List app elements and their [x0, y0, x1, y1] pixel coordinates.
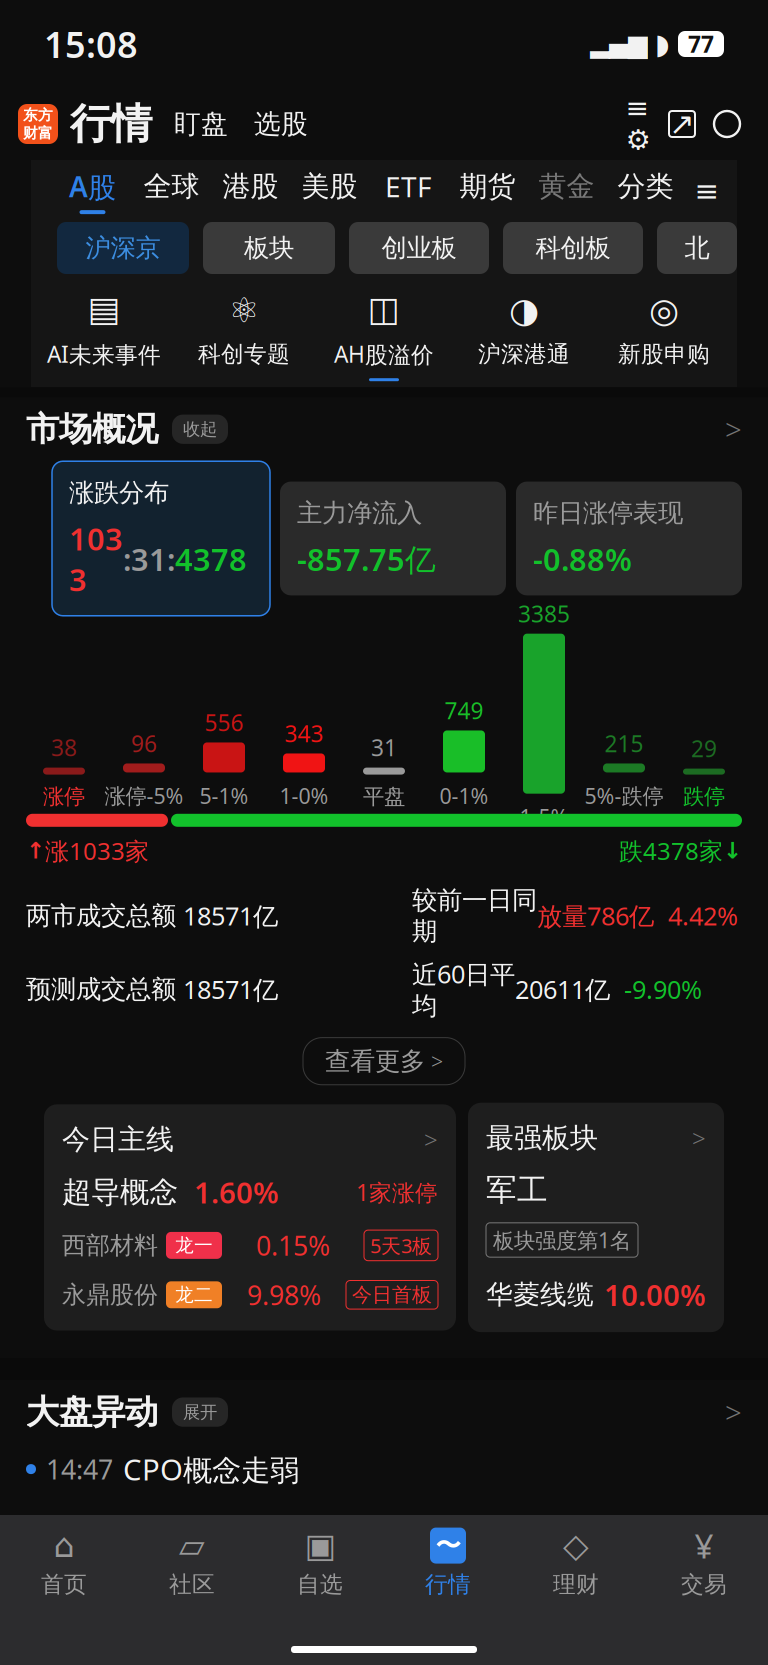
button[interactable]: 北 — [657, 222, 737, 274]
staticText: ▂▄▆ — [590, 30, 647, 58]
staticText: A股 — [69, 168, 116, 205]
button[interactable]: 全球 — [132, 160, 211, 222]
staticText: 收起 — [183, 419, 217, 440]
button[interactable]: 筛选设置 — [616, 102, 660, 146]
staticText: 5天3板 — [370, 1232, 432, 1259]
button[interactable]: ⌂ — [0, 1520, 128, 1606]
button[interactable]: ¥ — [640, 1520, 768, 1606]
staticText: 1家涨停 — [356, 1177, 438, 1207]
button[interactable]: 板块 — [203, 222, 335, 274]
staticText: 涨1033家 — [45, 835, 149, 867]
button[interactable]: A股 — [53, 160, 132, 222]
button[interactable]: 昨日涨停表现 — [516, 482, 742, 595]
button[interactable]: 搜索 — [704, 102, 750, 146]
button[interactable]: 主力净流入 — [280, 482, 506, 595]
button[interactable]: 查看更多 — [303, 1038, 465, 1085]
button[interactable]: 盯盘 — [152, 108, 228, 140]
staticText: ETF — [385, 168, 432, 205]
staticText: 永鼎股份 — [62, 1280, 158, 1310]
button[interactable]: 今日主线 — [44, 1104, 456, 1330]
staticText: > — [424, 1124, 438, 1155]
staticText: 东方 财富 — [23, 106, 53, 142]
button[interactable]: 市场概况 — [0, 397, 768, 461]
button[interactable]: ▱ — [128, 1520, 256, 1606]
staticText: 美股 — [301, 169, 357, 204]
button[interactable]: ◎ — [594, 289, 734, 380]
staticText: ≡⚙ — [625, 92, 650, 156]
staticText: 4.42% — [654, 899, 738, 933]
button[interactable]: 涨跌分布 — [52, 461, 270, 616]
staticText: 放量786亿 — [537, 899, 654, 933]
staticText: 交易 — [681, 1571, 727, 1598]
button[interactable]: 14:47 — [0, 1444, 768, 1494]
button[interactable]: ◇ — [512, 1520, 640, 1606]
button[interactable]: ◫ — [314, 288, 454, 381]
button[interactable]: 港股 — [211, 160, 290, 222]
staticText: 5%-跌停 — [584, 781, 663, 810]
staticText: 查看更多 — [325, 1046, 425, 1077]
staticText: 29 — [691, 733, 717, 764]
button[interactable]: ▤ — [34, 288, 174, 381]
button[interactable]: ETF — [369, 160, 448, 222]
staticText: AH股溢价 — [334, 339, 434, 369]
staticText: 沪深港通 — [478, 340, 570, 368]
staticText: ◗ — [655, 28, 670, 60]
staticText: ↓ — [723, 838, 742, 864]
staticText: 北 — [684, 232, 709, 263]
staticText: 军工 — [486, 1171, 548, 1209]
button[interactable]: 选股 — [228, 108, 308, 140]
staticText: 港股 — [222, 169, 278, 204]
button[interactable]: 沪深京 — [57, 222, 189, 274]
button[interactable]: 创业板 — [349, 222, 489, 274]
staticText: 涨停 — [43, 784, 85, 810]
staticText: 市场概况 — [26, 409, 158, 450]
button[interactable]: 全部分类 — [685, 160, 729, 222]
staticText: ⌂ — [53, 1527, 74, 1564]
staticText: 板块强度第1名 — [493, 1226, 631, 1254]
staticText: 板块 — [244, 232, 294, 263]
staticText: 社区 — [169, 1571, 215, 1598]
button[interactable]: 美股 — [290, 160, 369, 222]
staticText: 全球 — [143, 169, 199, 204]
staticText: ⚛ — [228, 290, 259, 330]
staticText: 展开 — [183, 1401, 217, 1423]
staticText: 主力净流入 — [297, 498, 422, 529]
staticText: 分类 — [617, 169, 673, 204]
staticText: 4378 — [175, 539, 247, 579]
staticText: 龙二 — [175, 1283, 213, 1306]
button[interactable]: 分享 — [660, 102, 704, 146]
button[interactable]: ⚛ — [174, 289, 314, 380]
button[interactable]: 大盘异动 — [0, 1380, 768, 1444]
staticText: 盯盘 — [174, 108, 228, 140]
staticText: 15:08 — [44, 20, 138, 68]
staticText: 今日首板 — [352, 1282, 432, 1307]
staticText: 科创板 — [535, 232, 610, 263]
staticText: 黄金 — [538, 169, 594, 204]
button[interactable]: ◑ — [454, 289, 594, 380]
button[interactable]: 科创板 — [503, 222, 643, 274]
staticText: 18571亿 — [176, 972, 278, 1006]
staticText: 1-5% — [519, 803, 568, 831]
staticText: 20611亿 — [515, 972, 610, 1006]
staticText: 0.15% — [256, 1228, 330, 1263]
staticText: CPO概念走弱 — [123, 1450, 299, 1489]
staticText: -9.90% — [610, 972, 702, 1006]
staticText: 行情 — [70, 99, 152, 149]
staticText: 18571亿 — [176, 899, 278, 933]
staticText: 新股申购 — [618, 340, 710, 368]
staticText: 预测成交总额 — [26, 974, 176, 1005]
button[interactable]: 分类 — [606, 160, 685, 222]
button[interactable]: ▣ — [256, 1520, 384, 1606]
button[interactable]: 期货 — [448, 160, 527, 222]
button[interactable]: 最强板块 — [468, 1103, 724, 1332]
staticText: 西部材料 — [62, 1231, 158, 1260]
staticText: 涨跌分布 — [69, 477, 169, 508]
staticText: > — [725, 410, 742, 449]
staticText: 14:47 — [46, 1451, 113, 1487]
button[interactable]: 黄金 — [527, 160, 606, 222]
staticText: 近60日平均 — [412, 957, 515, 1022]
staticText: ◫ — [367, 289, 400, 329]
staticText: 龙一 — [175, 1234, 213, 1257]
button[interactable]: 〜 — [384, 1520, 512, 1606]
staticText: 9.98% — [247, 1277, 321, 1312]
